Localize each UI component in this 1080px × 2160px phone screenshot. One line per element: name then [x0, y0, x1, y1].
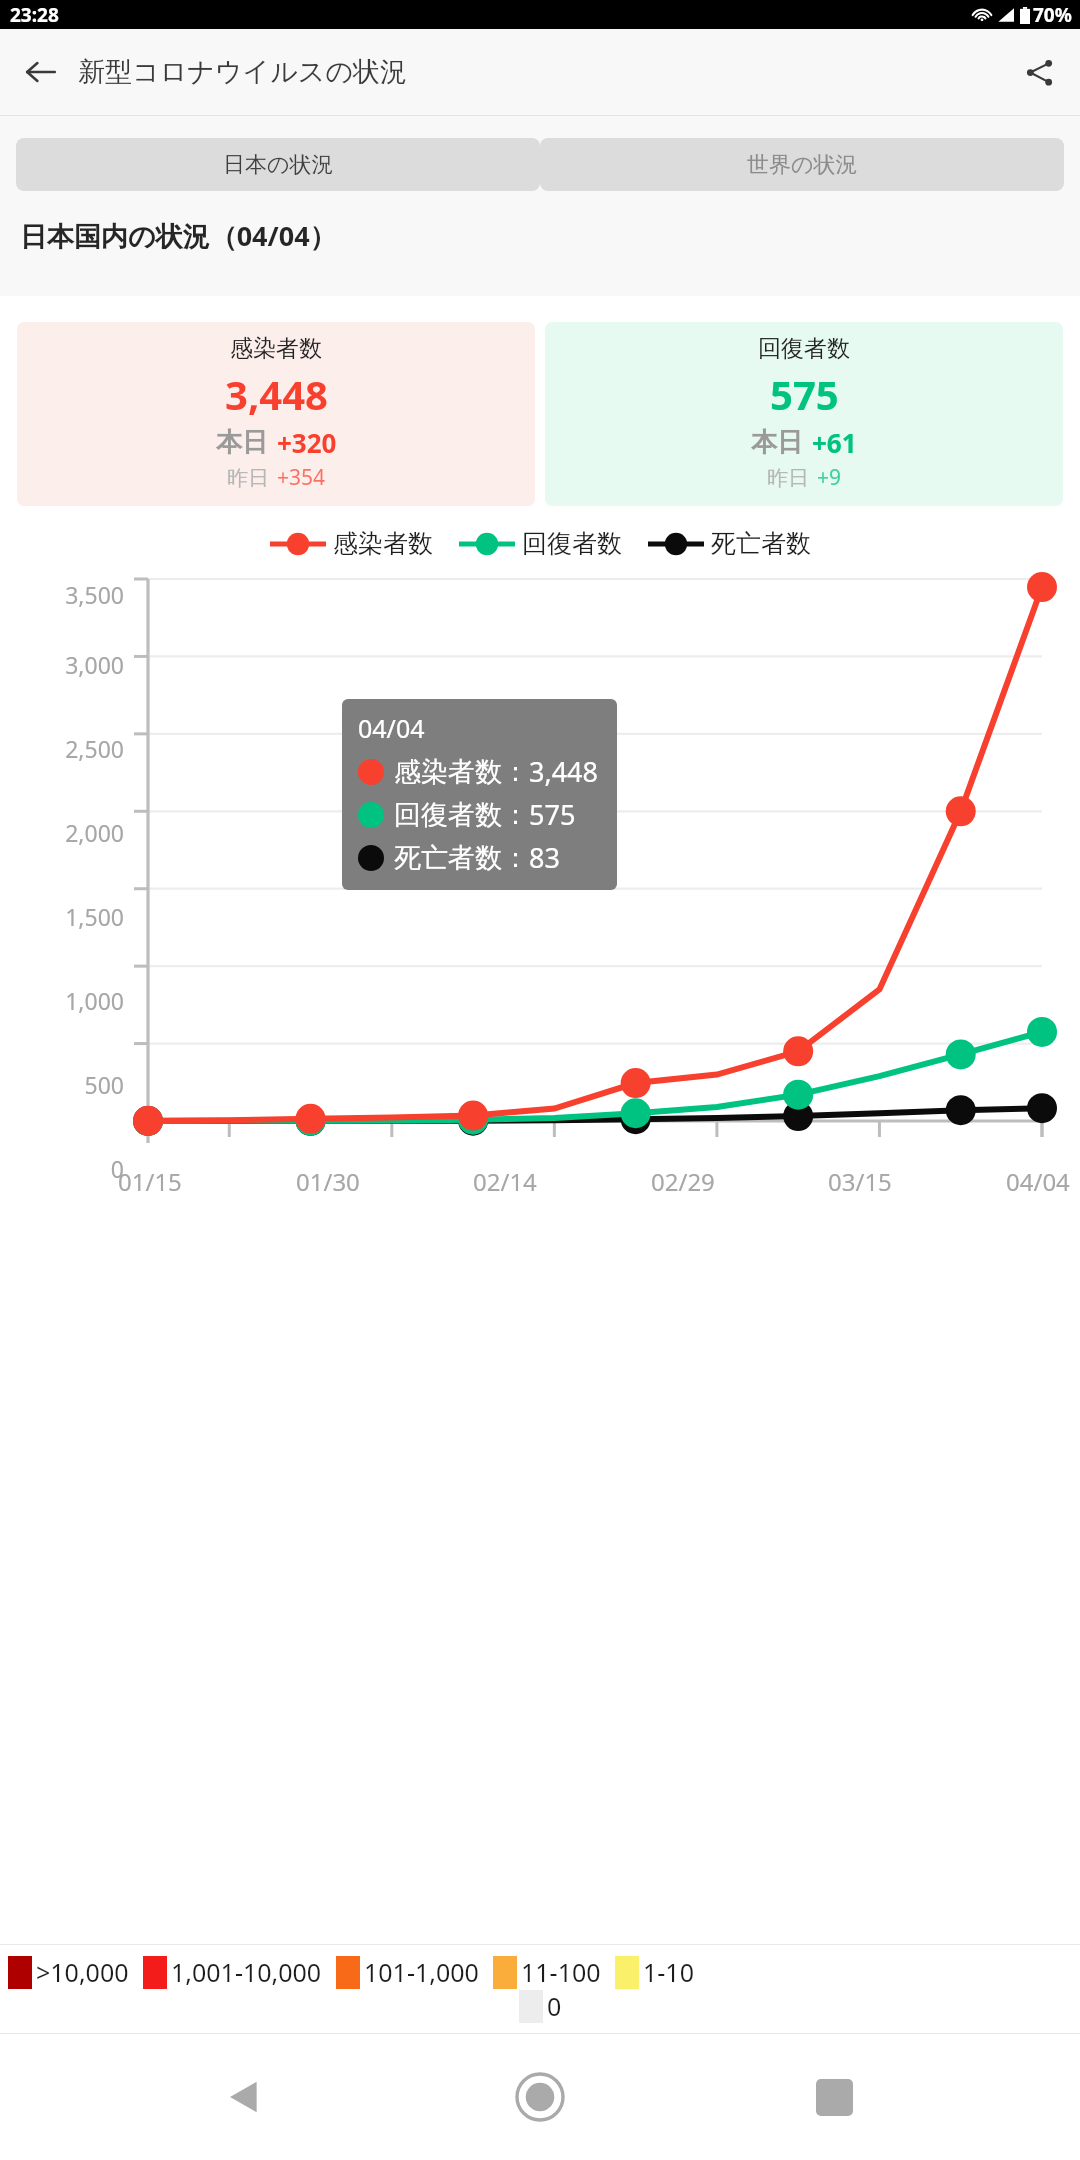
- staticText: 70%: [1033, 2, 1072, 28]
- staticText: 日本の状況: [223, 151, 334, 179]
- staticText: 500: [6, 1069, 124, 1100]
- staticText: 新型コロナウイルスの状況: [78, 55, 408, 89]
- staticText: 575: [529, 796, 576, 833]
- button[interactable]: 世界の状況: [540, 138, 1064, 191]
- staticText: +61: [812, 425, 857, 460]
- staticText: 11-100: [521, 1955, 601, 1989]
- staticText: 83: [529, 839, 560, 876]
- staticText: 1-10: [643, 1955, 694, 1989]
- button[interactable]: Back: [14, 45, 68, 99]
- staticText: 回復者数: [522, 528, 622, 559]
- staticText: 04/04: [1006, 1165, 1070, 1198]
- staticText: +320: [277, 425, 337, 460]
- staticText: >10,000: [36, 1955, 129, 1989]
- staticText: 02/14: [473, 1165, 537, 1198]
- staticText: 世界の状況: [747, 151, 858, 179]
- staticText: +354: [277, 463, 326, 492]
- staticText: 本日: [751, 426, 803, 459]
- staticText: 0: [547, 1989, 562, 2023]
- staticText: 1,500: [6, 901, 124, 932]
- button[interactable]: Recents: [786, 2049, 882, 2145]
- staticText: 本日: [216, 426, 268, 459]
- staticText: 04/04: [358, 711, 425, 745]
- staticText: 3,000: [6, 649, 124, 680]
- staticText: 0: [6, 1153, 124, 1184]
- button[interactable]: 感染者数: [17, 322, 535, 506]
- button[interactable]: Back: [198, 2049, 294, 2145]
- staticText: 感染者数: [230, 334, 322, 363]
- staticText: 感染者数: [333, 528, 433, 559]
- staticText: 1,000: [6, 985, 124, 1016]
- staticText: 1,001-10,000: [171, 1955, 322, 1989]
- staticText: 死亡者数：: [394, 841, 529, 875]
- staticText: 575: [770, 367, 839, 421]
- button[interactable]: 日本の状況: [16, 138, 540, 191]
- staticText: 死亡者数: [711, 528, 811, 559]
- staticText: 101-1,000: [364, 1955, 479, 1989]
- button[interactable]: 回復者数: [545, 322, 1063, 506]
- button[interactable]: Share: [1012, 45, 1066, 99]
- staticText: 感染者数：: [394, 755, 529, 789]
- staticText: 23:28: [10, 2, 59, 28]
- staticText: 昨日: [227, 465, 269, 491]
- staticText: 2,500: [6, 733, 124, 764]
- staticText: 日本国内の状況（04/04）: [20, 217, 337, 254]
- staticText: 回復者数：: [394, 798, 529, 832]
- staticText: 3,500: [6, 579, 124, 610]
- staticText: 3,448: [225, 367, 328, 421]
- staticText: 回復者数: [758, 334, 850, 363]
- staticText: 2,000: [6, 817, 124, 848]
- button[interactable]: Home: [492, 2049, 588, 2145]
- staticText: +9: [817, 463, 842, 492]
- staticText: 01/30: [296, 1165, 360, 1198]
- staticText: 03/15: [828, 1165, 892, 1198]
- staticText: 02/29: [651, 1165, 715, 1198]
- staticText: 昨日: [767, 465, 809, 491]
- staticText: 01/15: [118, 1165, 182, 1198]
- staticText: 3,448: [529, 753, 599, 790]
